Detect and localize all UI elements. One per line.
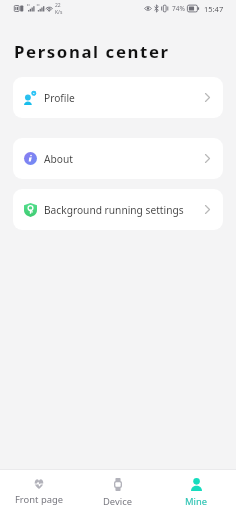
staticText: 22 — [55, 2, 61, 9]
staticText: 15:47 — [204, 4, 224, 14]
button[interactable]: Device — [78, 470, 157, 512]
button[interactable]: Mine — [157, 470, 236, 512]
staticText: Profile — [44, 91, 75, 105]
staticText: About — [44, 152, 73, 166]
staticText: K/s — [55, 9, 63, 16]
staticText: Personal center — [14, 40, 170, 63]
button[interactable]: Background running settings — [13, 189, 223, 230]
button[interactable]: Profile — [13, 77, 223, 118]
staticText: 74% — [172, 4, 185, 13]
staticText: Background running settings — [44, 203, 184, 217]
staticText: Mine — [185, 495, 208, 508]
button[interactable]: About — [13, 138, 223, 179]
button[interactable]: Front page — [0, 470, 78, 512]
staticText: Front page — [15, 493, 63, 506]
staticText: Device — [103, 495, 132, 508]
